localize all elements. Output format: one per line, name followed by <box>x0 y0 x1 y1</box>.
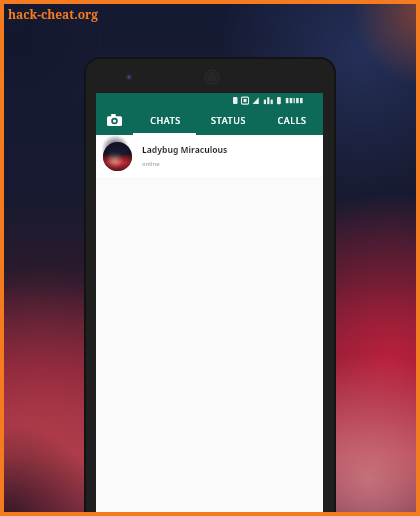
staticText: STATUS <box>211 114 246 126</box>
staticText: Ladybug Miraculous <box>142 144 228 156</box>
staticText: online <box>142 160 160 168</box>
button[interactable]: CHATS <box>133 107 197 133</box>
button[interactable]: STATUS <box>197 107 260 133</box>
button[interactable]: CALLS <box>260 107 323 133</box>
staticText: CHATS <box>150 114 181 126</box>
button[interactable]: Ladybug Miraculous <box>96 135 323 177</box>
staticText: hack-cheat.org <box>8 6 99 22</box>
staticText: CALLS <box>277 114 307 126</box>
button[interactable]: Camera <box>96 107 133 133</box>
